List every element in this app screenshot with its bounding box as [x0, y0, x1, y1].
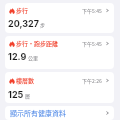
staticText: 125 [8, 89, 24, 100]
staticText: 層 [25, 92, 31, 99]
staticText: 20,327 [8, 18, 39, 29]
staticText: 12.9 [8, 51, 27, 62]
staticText: 步行・跑步距離 [16, 39, 59, 48]
button[interactable]: 步行・跑步距離 [5, 36, 114, 69]
button[interactable]: 樓層數 [5, 72, 114, 103]
staticText: 下午5:45 [82, 7, 102, 14]
staticText: 步 [40, 21, 46, 28]
staticText: 下午2:26 [82, 77, 102, 84]
staticText: 公里 [28, 54, 39, 61]
staticText: 下午5:45 [82, 40, 102, 47]
button[interactable]: 步行 [5, 3, 114, 33]
staticText: 顯示所有健康資料 [10, 108, 66, 118]
staticText: 步行 [16, 6, 29, 15]
staticText: 樓層數 [16, 76, 35, 85]
button[interactable]: 顯示所有健康資料 [5, 106, 114, 120]
